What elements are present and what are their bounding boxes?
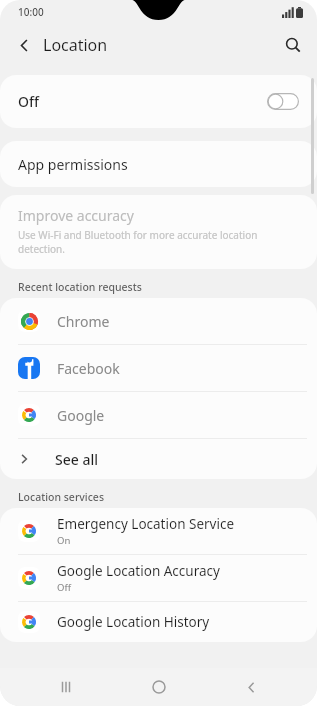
staticText: Use Wi-Fi and Bluetooth for more accurat… [18, 228, 299, 256]
button[interactable]: Facebook [0, 345, 317, 391]
button[interactable]: App permissions [0, 141, 317, 187]
button[interactable]: Improve accuracy [0, 195, 317, 269]
staticText: Emergency Location Service [57, 515, 235, 533]
staticText: On [57, 534, 71, 547]
staticText: Google [57, 406, 105, 425]
staticText: Location services [18, 490, 104, 504]
button[interactable]: Back [225, 668, 277, 706]
staticText: Off [57, 581, 71, 594]
button[interactable]: Back [6, 27, 42, 63]
staticText: App permissions [18, 155, 128, 174]
staticText: Google Location Accuracy [57, 562, 220, 580]
staticText: Off [18, 92, 267, 111]
button[interactable]: Off [0, 75, 317, 128]
staticText: Location [43, 34, 108, 56]
button[interactable]: See all [0, 439, 317, 479]
staticText: 10:00 [18, 5, 44, 19]
button[interactable]: Emergency Location Service [0, 508, 317, 554]
button[interactable]: Chrome [0, 298, 317, 344]
button[interactable]: Google Location Accuracy [0, 555, 317, 601]
button[interactable]: Search [275, 27, 311, 63]
staticText: Chrome [57, 312, 110, 331]
staticText: Facebook [57, 359, 120, 378]
button[interactable]: Google [0, 392, 317, 438]
button[interactable]: Home [133, 668, 185, 706]
staticText: Recent location requests [18, 280, 142, 294]
staticText: Google Location History [57, 613, 210, 631]
button[interactable]: Google Location History [0, 602, 317, 642]
staticText: See all [55, 450, 98, 469]
button[interactable]: Recents [40, 668, 92, 706]
staticText: Improve accuracy [18, 206, 134, 225]
